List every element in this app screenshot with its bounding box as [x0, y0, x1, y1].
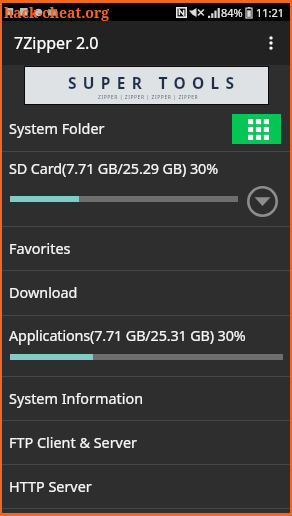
- button[interactable]: HTTP Server: [2, 465, 290, 508]
- button[interactable]: App manager: [232, 114, 281, 144]
- staticText: 84%: [221, 5, 243, 20]
- button[interactable]: Download: [2, 271, 290, 315]
- button[interactable]: Applications(7.71 GB/25.31 GB) 30%: [2, 316, 290, 376]
- staticText: SD Card(7.71 GB/25.29 GB) 30%: [9, 159, 218, 179]
- staticText: Download: [9, 283, 78, 303]
- staticText: System Information: [9, 389, 144, 409]
- button[interactable]: FTP Client & Server: [2, 421, 290, 464]
- button[interactable]: Favorites: [2, 227, 290, 270]
- button[interactable]: System Folder: [2, 106, 290, 151]
- staticText: hack-cheat.org: [4, 3, 110, 21]
- button[interactable]: Expand: [244, 183, 280, 219]
- staticText: FTP Client & Server: [9, 433, 137, 453]
- staticText: HTTP Server: [9, 477, 92, 497]
- staticText: ZIPPER | ZIPPER | ZIPPER | ZIPPER: [98, 94, 199, 101]
- staticText: 11:21: [256, 5, 285, 20]
- button[interactable]: SD Card(7.71 GB/25.29 GB) 30%: [2, 152, 290, 226]
- button[interactable]: System Information: [2, 377, 290, 420]
- staticText: System Folder: [9, 119, 105, 139]
- button[interactable]: More options: [252, 24, 290, 62]
- staticText: Favorites: [9, 239, 71, 259]
- staticText: SUPER TOOLS: [68, 72, 241, 93]
- staticText: Applications(7.71 GB/25.31 GB) 30%: [9, 326, 246, 346]
- staticText: 7Zipper 2.0: [14, 32, 99, 54]
